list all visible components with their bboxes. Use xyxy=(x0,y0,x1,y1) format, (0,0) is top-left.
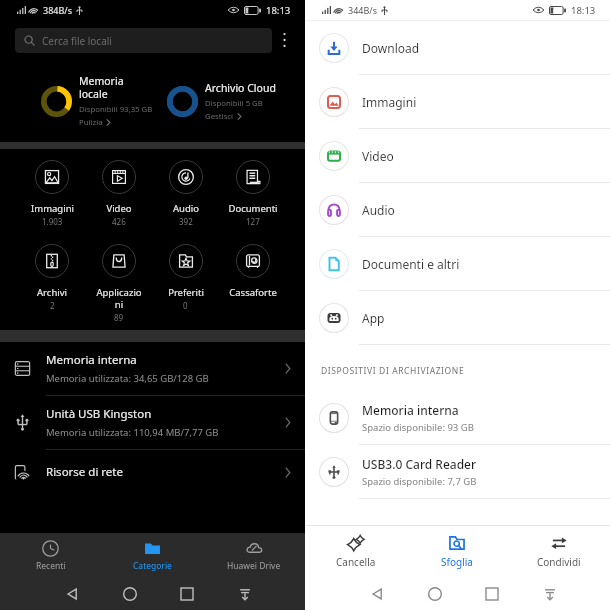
button[interactable]: Cerca file locali xyxy=(15,28,272,53)
staticText: 1.903 xyxy=(42,216,63,227)
button[interactable]: Unità USB Kingston xyxy=(0,396,305,449)
staticText: Applicazio ni xyxy=(96,286,142,311)
button[interactable]: Archivio Cloud xyxy=(165,60,305,142)
button[interactable]: Audio xyxy=(152,160,219,227)
staticText: Huawei Drive xyxy=(227,560,281,572)
button[interactable]: Documenti xyxy=(219,160,286,227)
button[interactable]: Back xyxy=(364,581,390,607)
button[interactable]: Cassaforte xyxy=(219,244,286,300)
button[interactable]: Video xyxy=(305,129,610,182)
staticText: Sfoglia xyxy=(441,555,473,569)
staticText: 344B/s xyxy=(348,4,377,16)
staticText: Cancella xyxy=(336,555,376,569)
staticText: 392 xyxy=(179,216,193,227)
staticText: Immagini xyxy=(362,94,417,110)
staticText: Documenti xyxy=(228,202,278,215)
button[interactable]: Audio xyxy=(305,183,610,236)
staticText: Memoria interna xyxy=(362,402,459,418)
staticText: Memoria locale xyxy=(79,74,124,101)
staticText: Disponibili 5 GB xyxy=(205,98,263,109)
staticText: 2 xyxy=(50,300,55,311)
staticText: Archivio Cloud xyxy=(205,81,276,95)
staticText: 0 xyxy=(183,300,188,311)
staticText: Pulizia xyxy=(79,117,103,128)
button[interactable]: Memoria interna xyxy=(305,391,610,444)
button[interactable]: Hide keyboard xyxy=(537,581,563,607)
staticText: Immagini xyxy=(31,202,74,215)
button[interactable]: Video xyxy=(85,160,152,227)
staticText: Documenti e altri xyxy=(362,256,460,272)
staticText: Audio xyxy=(362,202,395,218)
staticText: USB3.0 Card Reader xyxy=(362,456,477,472)
button[interactable]: Immagini xyxy=(19,160,85,227)
button[interactable]: Preferiti xyxy=(152,244,219,311)
button[interactable]: Back xyxy=(59,581,85,607)
staticText: Disponibili 93,35 GB xyxy=(79,104,153,115)
staticText: Risorse di rete xyxy=(46,464,123,480)
staticText: 18:13 xyxy=(266,4,291,17)
staticText: Spazio disponibile: 93 GB xyxy=(362,421,474,434)
staticText: Cassaforte xyxy=(229,286,277,299)
staticText: Unità USB Kingston xyxy=(46,406,152,422)
staticText: Memoria utilizzata: 110,94 MB/7,77 GB xyxy=(46,426,219,439)
staticText: Preferiti xyxy=(168,286,204,299)
staticText: App xyxy=(362,310,385,326)
staticText: Gestisci xyxy=(205,111,234,122)
button[interactable]: Applicazio ni xyxy=(85,244,152,323)
button[interactable]: Recenti xyxy=(0,533,101,578)
staticText: 62 xyxy=(553,7,560,15)
staticText: Cerca file locali xyxy=(42,34,112,48)
button[interactable]: Sfoglia xyxy=(406,526,508,578)
button[interactable]: App xyxy=(305,291,610,344)
staticText: Archivi xyxy=(37,286,67,299)
staticText: 426 xyxy=(112,216,126,227)
staticText: Video xyxy=(106,202,132,215)
button[interactable]: Condividi xyxy=(508,526,610,578)
button[interactable]: Categorie xyxy=(101,533,203,578)
staticText: 384B/s xyxy=(43,4,72,16)
staticText: 18:13 xyxy=(571,4,596,17)
staticText: DISPOSITIVI DI ARCHIVIAZIONE xyxy=(321,365,465,377)
button[interactable]: Home xyxy=(117,581,143,607)
button[interactable]: Recents xyxy=(479,581,505,607)
staticText: Spazio disponibile: 7,7 GB xyxy=(362,475,477,488)
button[interactable]: Hide keyboard xyxy=(232,581,258,607)
staticText: Video xyxy=(362,148,394,164)
button[interactable]: Cancella xyxy=(305,526,406,578)
staticText: Audio xyxy=(173,202,199,215)
button[interactable]: Home xyxy=(422,581,448,607)
staticText: Condividi xyxy=(537,555,581,569)
button[interactable]: Memoria locale xyxy=(0,60,165,142)
button[interactable]: Documenti e altri xyxy=(305,237,610,290)
button[interactable]: Recents xyxy=(174,581,200,607)
staticText: 62 xyxy=(248,7,255,15)
staticText: Memoria utilizzata: 34,65 GB/128 GB xyxy=(46,372,209,385)
button[interactable]: Risorse di rete xyxy=(0,450,305,494)
staticText: Categorie xyxy=(133,560,172,572)
staticText: Memoria interna xyxy=(46,352,137,368)
button[interactable]: Huawei Drive xyxy=(203,533,305,578)
button[interactable]: More options xyxy=(272,25,297,55)
button[interactable]: Immagini xyxy=(305,75,610,128)
staticText: Recenti xyxy=(36,560,66,572)
staticText: Download xyxy=(362,40,420,56)
staticText: 127 xyxy=(246,216,260,227)
staticText: 89 xyxy=(114,312,124,323)
button[interactable]: Download xyxy=(305,21,610,74)
button[interactable]: Memoria interna xyxy=(0,342,305,395)
button[interactable]: Archivi xyxy=(19,244,85,311)
button[interactable]: USB3.0 Card Reader xyxy=(305,445,610,498)
